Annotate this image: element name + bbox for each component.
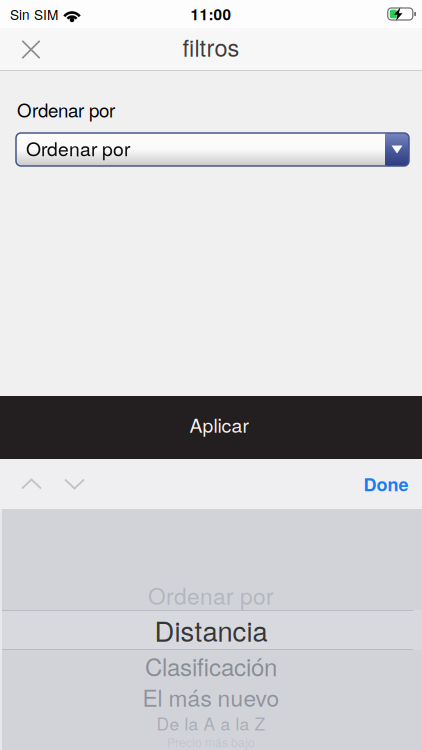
staticText: Ordenar por (148, 579, 274, 611)
staticText: El más nuevo (142, 681, 279, 713)
staticText: Sin SIM (10, 4, 58, 24)
button[interactable]: Cerrar (8, 28, 54, 71)
staticText: Ordenar por (17, 96, 115, 123)
staticText: Precio más bajo (167, 733, 255, 750)
staticText: Aplicar (189, 411, 248, 438)
staticText: Distancia (154, 610, 267, 649)
staticText: De la A a la Z (156, 711, 265, 735)
staticText: Clasificación (145, 649, 277, 683)
button[interactable]: Ordenar por (16, 133, 409, 166)
staticText: Done (363, 471, 408, 497)
button[interactable]: Campo anterior (10, 459, 53, 509)
button[interactable]: Campo siguiente (53, 459, 96, 509)
staticText: filtros (182, 30, 239, 63)
staticText: Ordenar por (26, 134, 130, 162)
staticText: 11:00 (190, 3, 231, 25)
button[interactable]: Done (351, 459, 421, 509)
button[interactable]: Aplicar (0, 396, 422, 459)
